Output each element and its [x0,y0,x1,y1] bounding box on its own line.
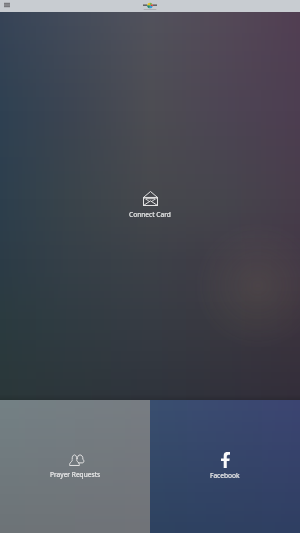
button[interactable]: Connect Card [0,191,300,231]
button[interactable]: Facebook [150,400,300,533]
button[interactable]: Open navigation menu [1,0,12,10]
staticText: Facebook [210,471,240,480]
staticText: Prayer Requests [50,470,101,479]
button[interactable]: Prayer Requests [0,400,150,533]
staticText: Connect Card [129,210,171,219]
